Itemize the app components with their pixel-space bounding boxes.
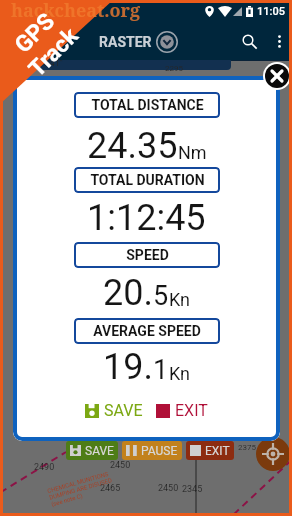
button[interactable]: Search <box>232 24 266 58</box>
button[interactable]: My location <box>256 437 290 471</box>
staticText: SAVE <box>85 444 114 458</box>
button[interactable]: RASTER <box>99 31 178 53</box>
staticText: Track <box>23 22 84 83</box>
staticText: 2465 <box>100 483 121 494</box>
staticText: 1:12:45 <box>87 197 206 239</box>
button[interactable]: More options <box>266 28 292 54</box>
button[interactable]: EXIT <box>190 441 230 460</box>
button[interactable]: TOTAL DURATION <box>74 167 220 193</box>
staticText: 2450 <box>158 483 179 494</box>
button[interactable]: SAVE <box>85 401 143 420</box>
button[interactable]: Close <box>265 64 289 88</box>
staticText: TOTAL DURATION <box>90 172 205 188</box>
staticText: 11:05 <box>257 5 285 18</box>
button[interactable]: EXIT <box>156 401 208 420</box>
staticText: RASTER <box>99 34 152 50</box>
button[interactable]: AVERAGE SPEED <box>74 318 220 344</box>
staticText: AVERAGE SPEED <box>93 323 201 339</box>
staticText: SPEED <box>126 247 169 263</box>
staticText: SAVE <box>104 401 143 420</box>
staticText: 2345 <box>182 484 203 495</box>
staticText: (see note C) <box>50 492 84 507</box>
staticText: Nm <box>178 142 207 163</box>
staticText: 1 <box>153 354 169 386</box>
staticText: PAUSE <box>141 444 178 458</box>
staticText: 2375 <box>238 443 256 452</box>
staticText: Kn <box>169 363 191 384</box>
staticText: 5 <box>153 280 169 312</box>
button[interactable]: PAUSE <box>126 441 178 460</box>
button[interactable]: SAVE <box>70 441 114 460</box>
button[interactable]: TOTAL DISTANCE <box>74 92 220 118</box>
staticText: CHEMICAL MUNITIONS <box>46 470 110 494</box>
staticText: 20. <box>103 272 153 314</box>
staticText: 2450 <box>110 460 131 471</box>
staticText: GPS <box>9 8 60 58</box>
staticText: 24.35 <box>87 125 178 167</box>
staticText: DUMPING ARE DISUSED <box>48 476 113 501</box>
staticText: 2490 <box>34 462 55 473</box>
button[interactable]: SPEED <box>74 242 220 268</box>
staticText: 50'41" <box>38 58 63 69</box>
staticText: EXIT <box>175 401 208 420</box>
staticText: Kn <box>169 289 191 310</box>
staticText: TOTAL DISTANCE <box>91 97 204 113</box>
staticText: EXIT <box>205 444 230 458</box>
staticText: 2295 <box>165 64 183 73</box>
staticText: 19. <box>103 346 153 388</box>
staticText: hackcheat.org <box>11 0 141 23</box>
